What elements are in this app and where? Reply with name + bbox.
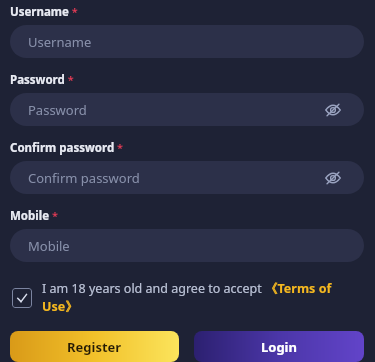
staticText: Register [67, 338, 122, 356]
staticText: Password * [10, 72, 74, 88]
button[interactable]: Mobile [10, 229, 364, 262]
staticText: Password [28, 101, 87, 119]
button[interactable]: Agree to terms [12, 280, 364, 315]
button[interactable]: Register [10, 331, 179, 362]
staticText: Confirm password [28, 169, 140, 187]
staticText: Confirm password * [10, 140, 123, 156]
button[interactable]: Password [10, 93, 364, 126]
button[interactable]: Confirm password [10, 161, 364, 194]
staticText: I am 18 years old and agree to accept 《T… [42, 280, 364, 315]
other: Agree to terms [12, 288, 32, 308]
staticText: Username [28, 33, 92, 51]
staticText: Login [261, 338, 297, 356]
button[interactable]: Show password [320, 165, 346, 191]
staticText: Mobile * [10, 208, 58, 224]
button[interactable]: Show password [320, 97, 346, 123]
button[interactable]: Username [10, 25, 364, 58]
button[interactable]: Login [194, 331, 364, 362]
staticText: Mobile [28, 237, 70, 255]
staticText: Username * [10, 4, 78, 20]
